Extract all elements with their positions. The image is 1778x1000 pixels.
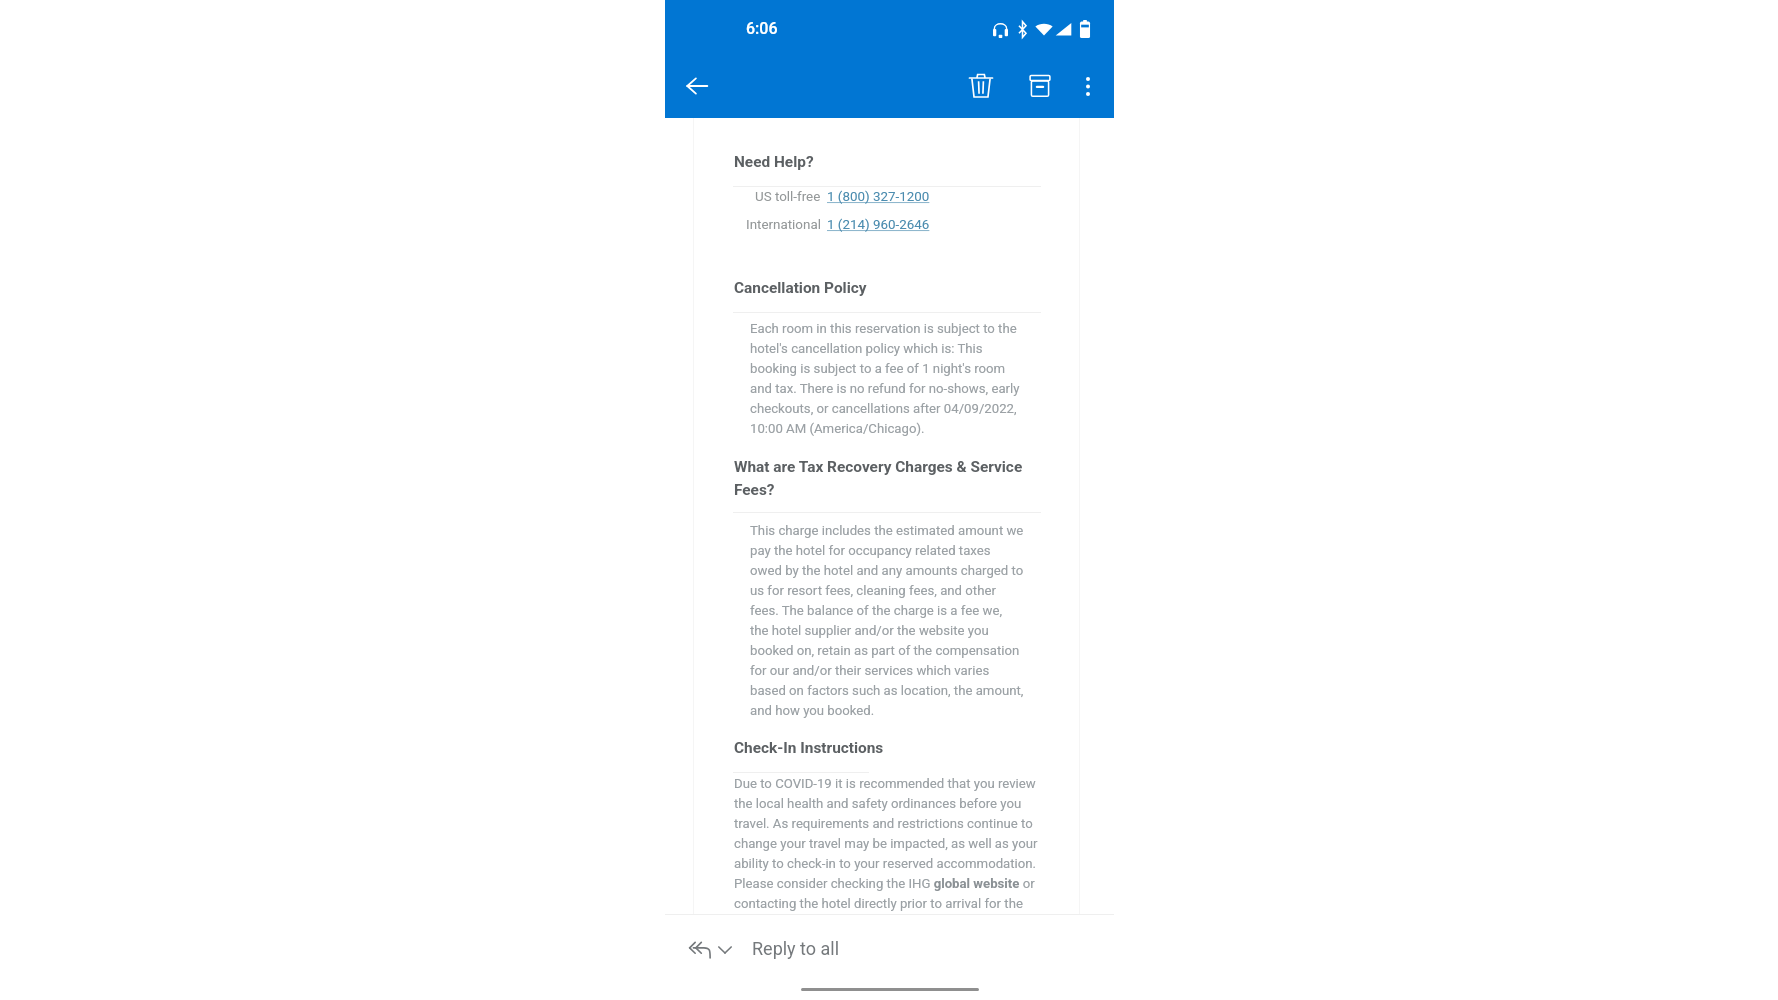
staticText: International: [746, 217, 821, 233]
button[interactable]: More options: [1066, 64, 1110, 108]
staticText: This charge includes the estimated amoun…: [750, 523, 1024, 718]
staticText: 1 (800) 327-1200: [827, 189, 930, 205]
staticText: Due to COVID-19 it is recommended that y…: [734, 776, 1038, 911]
staticText: US toll-free: [755, 189, 821, 205]
button[interactable]: Archive: [1018, 64, 1062, 108]
staticText: Need Help?: [734, 153, 814, 171]
staticText: Reply to all: [752, 938, 840, 959]
staticText: 1 (214) 960-2646: [827, 217, 930, 233]
button[interactable]: Call 1 (800) 327-1200: [827, 189, 930, 205]
staticText: Each room in this reservation is subject…: [750, 321, 1020, 436]
staticText: What are Tax Recovery Charges & Service …: [734, 458, 1034, 499]
staticText: Check-In Instructions: [734, 739, 884, 757]
button[interactable]: Back: [675, 64, 719, 108]
staticText: Cancellation Policy: [734, 279, 867, 297]
button[interactable]: Reply to all: [665, 915, 1114, 981]
button[interactable]: Call 1 (214) 960-2646: [827, 217, 930, 233]
button[interactable]: Delete: [959, 63, 1003, 107]
staticText: 6:06: [746, 19, 778, 38]
